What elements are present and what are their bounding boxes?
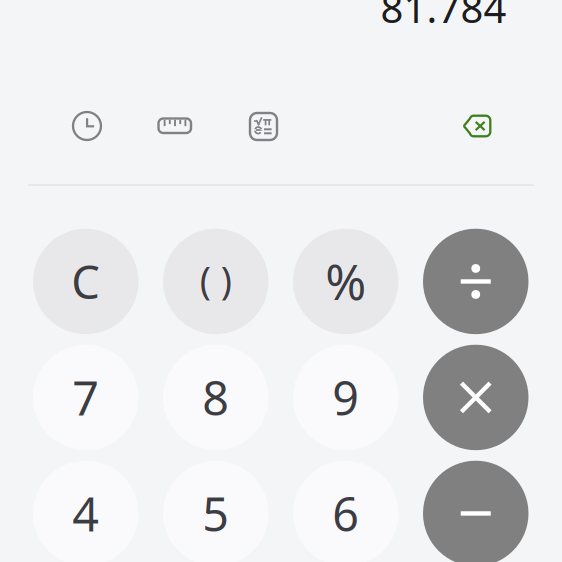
staticText: 9 bbox=[332, 366, 359, 428]
button[interactable]: 5 bbox=[163, 461, 268, 562]
staticText: ( ) bbox=[200, 255, 232, 304]
button[interactable]: 4 bbox=[33, 461, 138, 562]
button[interactable]: Subtract bbox=[423, 461, 528, 562]
staticText: 8 bbox=[202, 366, 229, 428]
staticText: 4 bbox=[72, 482, 99, 544]
button[interactable]: C bbox=[33, 229, 138, 334]
button[interactable]: 8 bbox=[163, 345, 268, 450]
staticText: 81.784 bbox=[380, 0, 506, 34]
button[interactable]: 7 bbox=[33, 345, 138, 450]
button[interactable]: Unit converter bbox=[158, 118, 191, 133]
staticText: C bbox=[71, 251, 100, 311]
button[interactable]: ( ) bbox=[163, 229, 268, 334]
button[interactable]: Formulas bbox=[250, 113, 277, 140]
button[interactable]: 6 bbox=[293, 461, 398, 562]
button[interactable]: Delete bbox=[462, 114, 491, 137]
staticText: 6 bbox=[332, 482, 359, 544]
button[interactable]: Multiply bbox=[423, 345, 528, 450]
button[interactable]: History bbox=[73, 112, 101, 140]
button[interactable]: Divide bbox=[423, 229, 528, 334]
staticText: 7 bbox=[72, 366, 99, 428]
staticText: 5 bbox=[202, 482, 229, 544]
button[interactable]: 9 bbox=[293, 345, 398, 450]
staticText: % bbox=[325, 248, 366, 314]
button[interactable]: % bbox=[293, 229, 398, 334]
